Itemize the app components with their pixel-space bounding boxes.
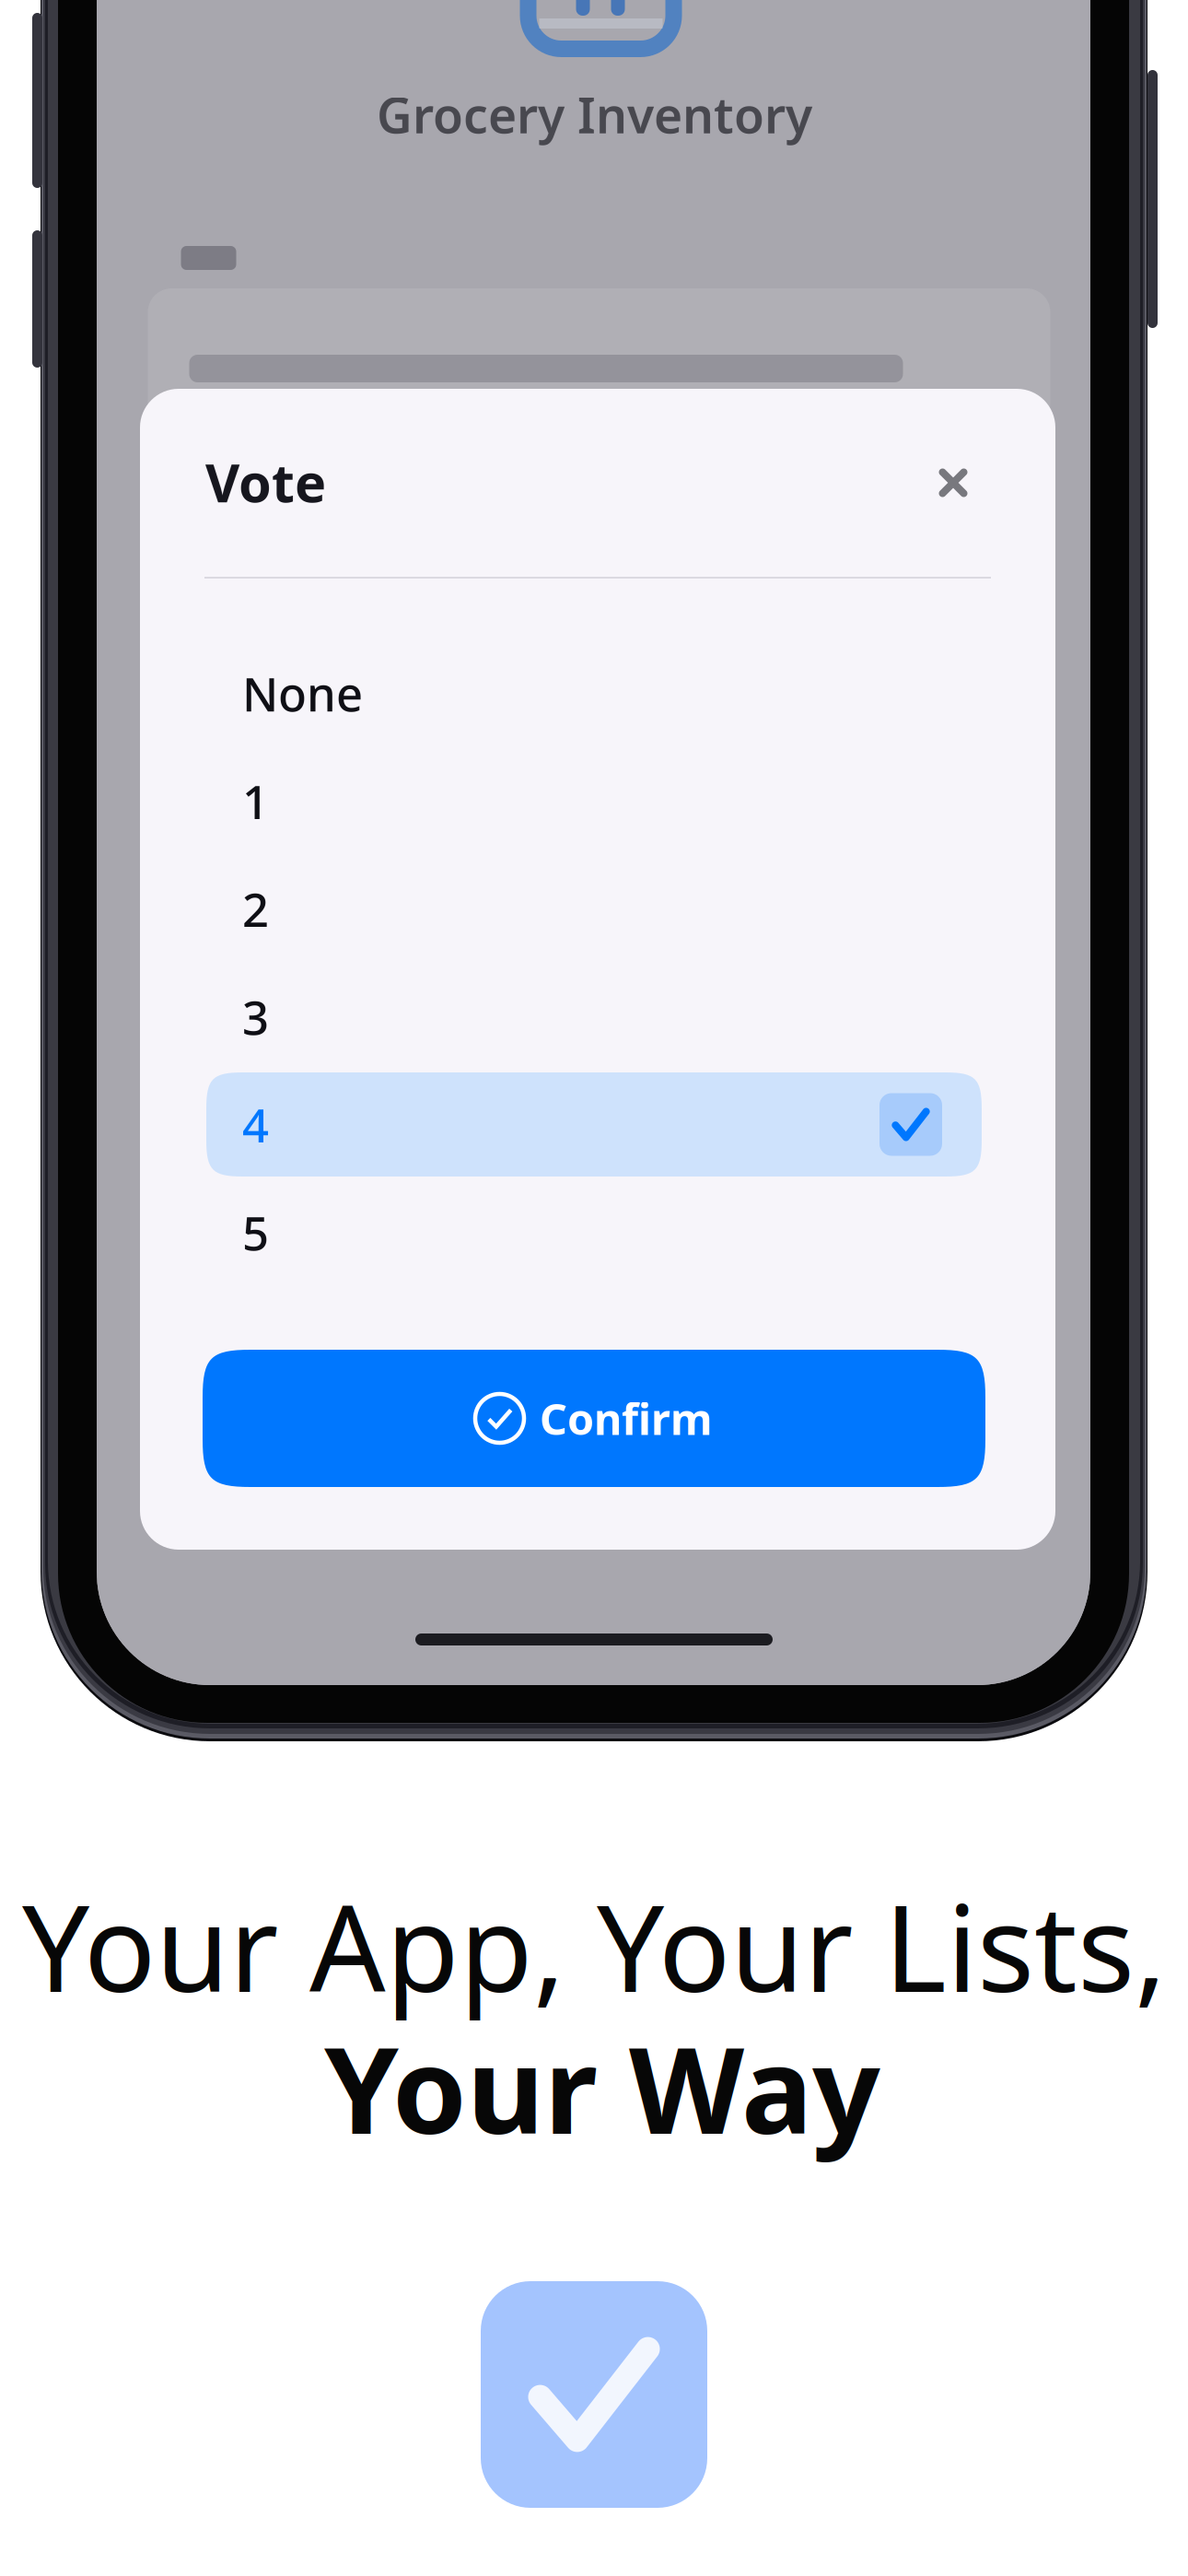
staticText: Your Way	[324, 2008, 880, 2167]
staticText: 5	[242, 1201, 269, 1263]
staticText: Your App, Your Lists,	[22, 1867, 1167, 2025]
staticText: Confirm	[540, 1390, 713, 1447]
button[interactable]: 1	[206, 749, 982, 853]
button[interactable]: 5	[206, 1180, 982, 1284]
staticText: Grocery Inventory	[377, 82, 812, 147]
button[interactable]: 4	[206, 1072, 982, 1177]
staticText: 4	[242, 1094, 269, 1156]
button[interactable]: Close	[907, 437, 999, 529]
staticText: Vote	[205, 447, 326, 517]
staticText: 2	[242, 878, 269, 940]
staticText: 1	[242, 770, 269, 832]
button[interactable]: None	[206, 641, 982, 745]
staticText: None	[242, 662, 363, 724]
button[interactable]: 3	[206, 965, 982, 1069]
staticText: 3	[242, 986, 269, 1048]
button[interactable]: 2	[206, 857, 982, 961]
button[interactable]: Confirm	[203, 1350, 985, 1487]
